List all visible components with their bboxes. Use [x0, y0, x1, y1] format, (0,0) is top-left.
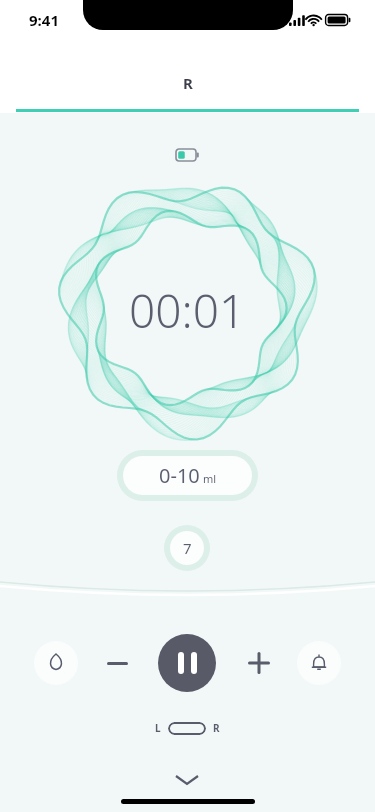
- button[interactable]: Humidity: [34, 641, 78, 685]
- staticText: 00:01: [129, 279, 246, 342]
- button[interactable]: 0-10: [117, 450, 258, 501]
- staticText: R: [183, 73, 193, 93]
- staticText: ml: [203, 471, 217, 486]
- button[interactable]: Increase: [241, 645, 277, 681]
- button[interactable]: Alarm: [297, 641, 341, 685]
- staticText: 7: [183, 538, 192, 558]
- staticText: 9:41: [29, 10, 59, 30]
- button[interactable]: Pause: [158, 634, 216, 692]
- staticText: R: [213, 721, 220, 735]
- button[interactable]: 7: [164, 525, 210, 571]
- button[interactable]: L: [0, 721, 375, 735]
- button[interactable]: Collapse: [163, 760, 211, 800]
- staticText: 0-10: [159, 462, 200, 489]
- staticText: L: [155, 721, 161, 735]
- button[interactable]: Decrease: [99, 645, 135, 681]
